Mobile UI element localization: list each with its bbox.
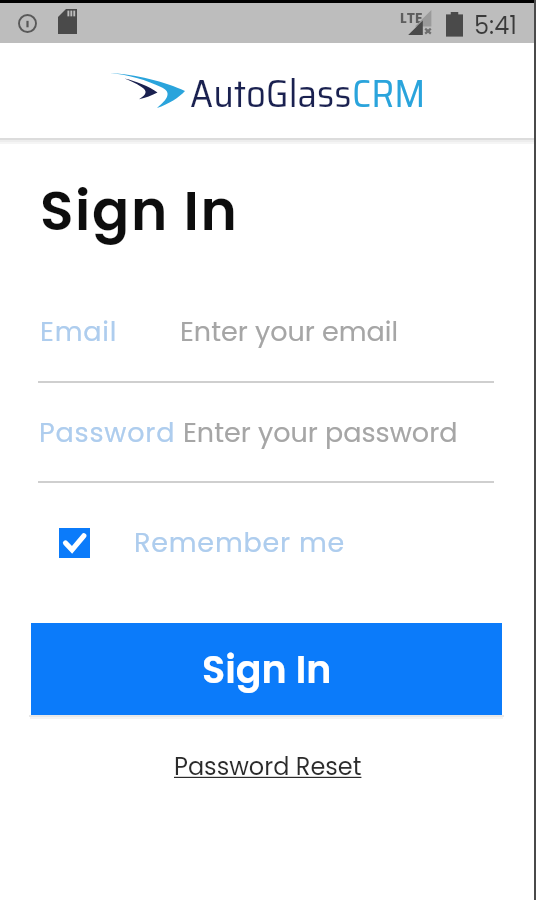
staticText: Sign In [202, 643, 332, 696]
other: SD card [58, 9, 77, 34]
staticText: 5:41 [474, 9, 517, 43]
staticText: Enter your email [180, 313, 399, 351]
other: Battery [446, 9, 463, 39]
staticText: Enter your password [183, 414, 458, 452]
staticText: CRM [352, 63, 426, 124]
staticText: LTE [400, 8, 423, 28]
staticText: Email [40, 313, 118, 351]
staticText: Sign In [40, 172, 239, 249]
button[interactable]: Remember me [59, 520, 346, 566]
staticText: AutoGlass [190, 63, 352, 124]
button[interactable]: Sign In [31, 623, 502, 715]
staticText: Password [39, 414, 176, 452]
staticText: Remember me [134, 524, 346, 562]
button[interactable]: Password Reset [168, 746, 368, 788]
other: Mobile signal [404, 7, 434, 41]
other: Info [18, 14, 37, 33]
